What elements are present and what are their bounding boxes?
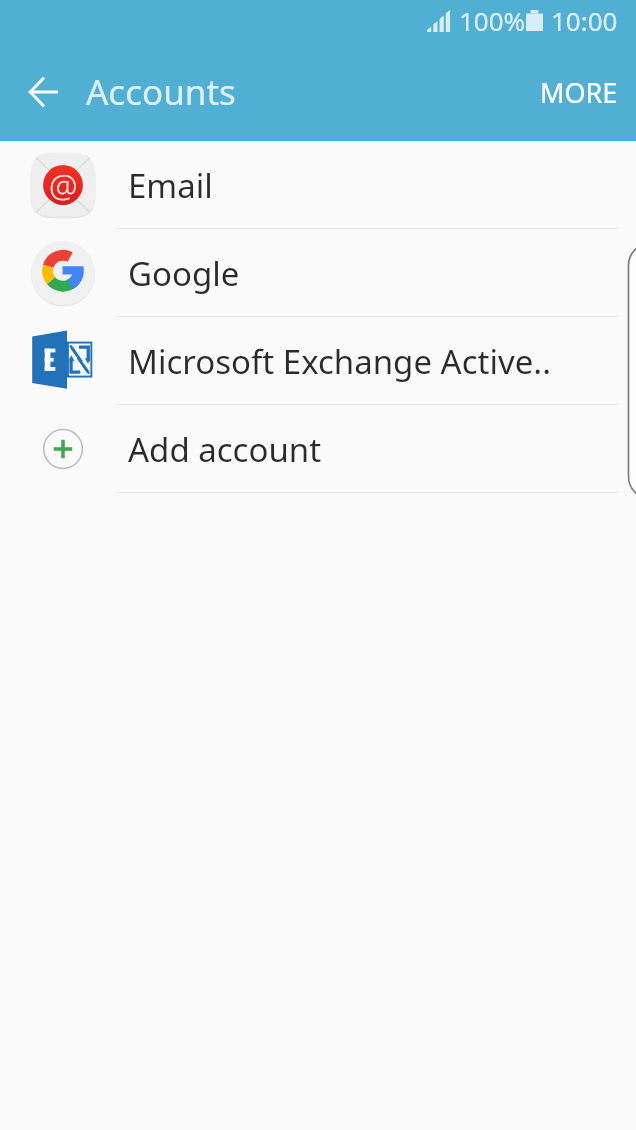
- staticText: MORE: [540, 74, 618, 111]
- button[interactable]: MORE: [526, 62, 632, 123]
- staticText: Accounts: [86, 68, 236, 116]
- staticText: Microsoft Exchange Active..: [128, 339, 552, 384]
- button[interactable]: Microsoft Exchange Active..: [0, 317, 636, 405]
- staticText: 10:00: [551, 3, 618, 38]
- staticText: 100%: [459, 3, 526, 38]
- button[interactable]: Add account: [0, 405, 636, 493]
- button[interactable]: Google: [0, 229, 636, 317]
- button[interactable]: @: [0, 141, 636, 229]
- staticText: @: [49, 163, 78, 207]
- staticText: Add account: [128, 427, 322, 472]
- button[interactable]: Navigate up: [14, 63, 72, 121]
- staticText: Google: [128, 251, 240, 296]
- staticText: Email: [128, 163, 213, 208]
